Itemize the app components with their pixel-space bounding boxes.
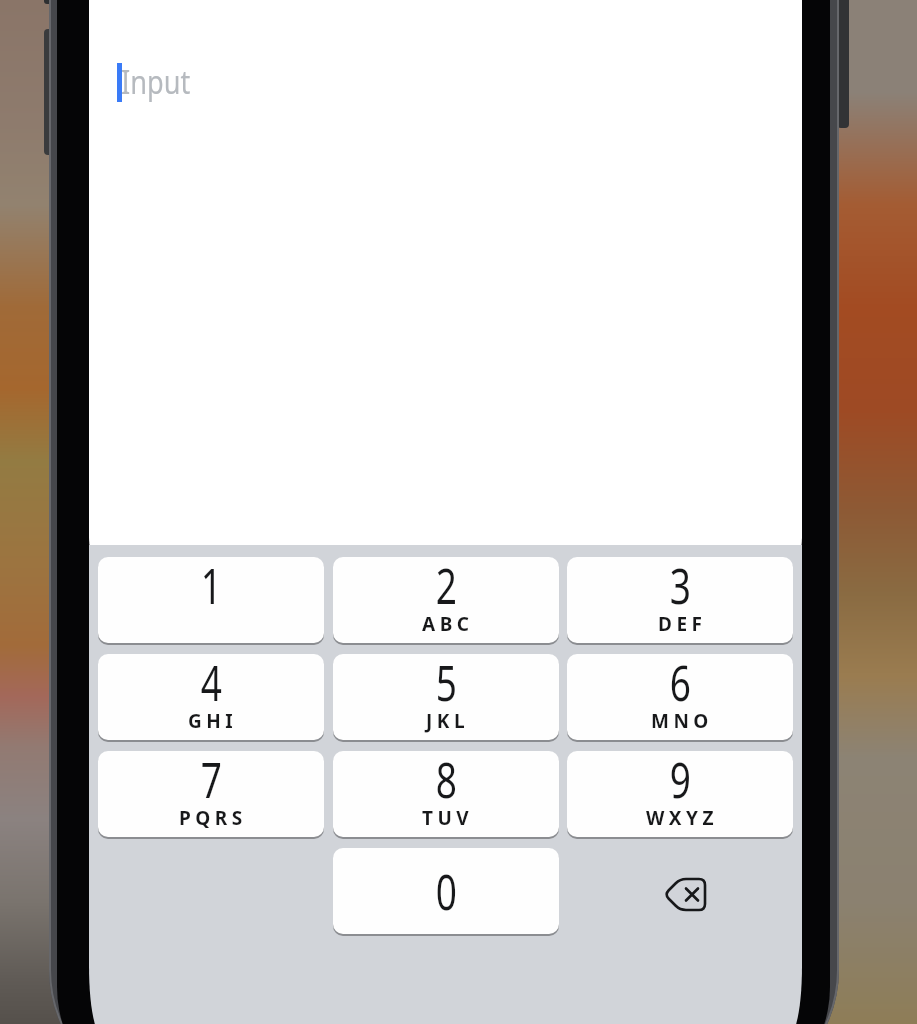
staticText: GHI (188, 708, 238, 734)
staticText: 2 (436, 551, 457, 619)
staticText: TUV (422, 805, 474, 831)
button[interactable]: 5 (333, 654, 559, 742)
staticText: 1 (201, 551, 222, 619)
button[interactable]: 6 (567, 654, 793, 742)
button[interactable]: 4 (98, 654, 324, 742)
staticText: DEF (658, 611, 707, 637)
staticText: WXYZ (646, 805, 718, 831)
button[interactable]: 2 (333, 557, 559, 645)
staticText: 6 (670, 648, 691, 716)
staticText: MNO (651, 708, 713, 734)
staticText: 7 (201, 745, 222, 813)
button[interactable]: 9 (567, 751, 793, 839)
button[interactable] (663, 877, 707, 912)
staticText: 0 (436, 857, 457, 925)
button[interactable]: 0 (333, 848, 559, 936)
staticText: 9 (670, 745, 691, 813)
staticText: 4 (201, 648, 222, 716)
staticText: Input (121, 60, 191, 104)
button[interactable]: 1 (98, 557, 324, 645)
staticText: JKL (426, 708, 470, 734)
button[interactable]: 7 (98, 751, 324, 839)
staticText: ABC (422, 611, 474, 637)
staticText: 5 (436, 648, 457, 716)
button[interactable]: 3 (567, 557, 793, 645)
staticText: 3 (670, 551, 691, 619)
button[interactable]: 8 (333, 751, 559, 839)
staticText: 8 (436, 745, 457, 813)
staticText: PQRS (179, 805, 247, 831)
